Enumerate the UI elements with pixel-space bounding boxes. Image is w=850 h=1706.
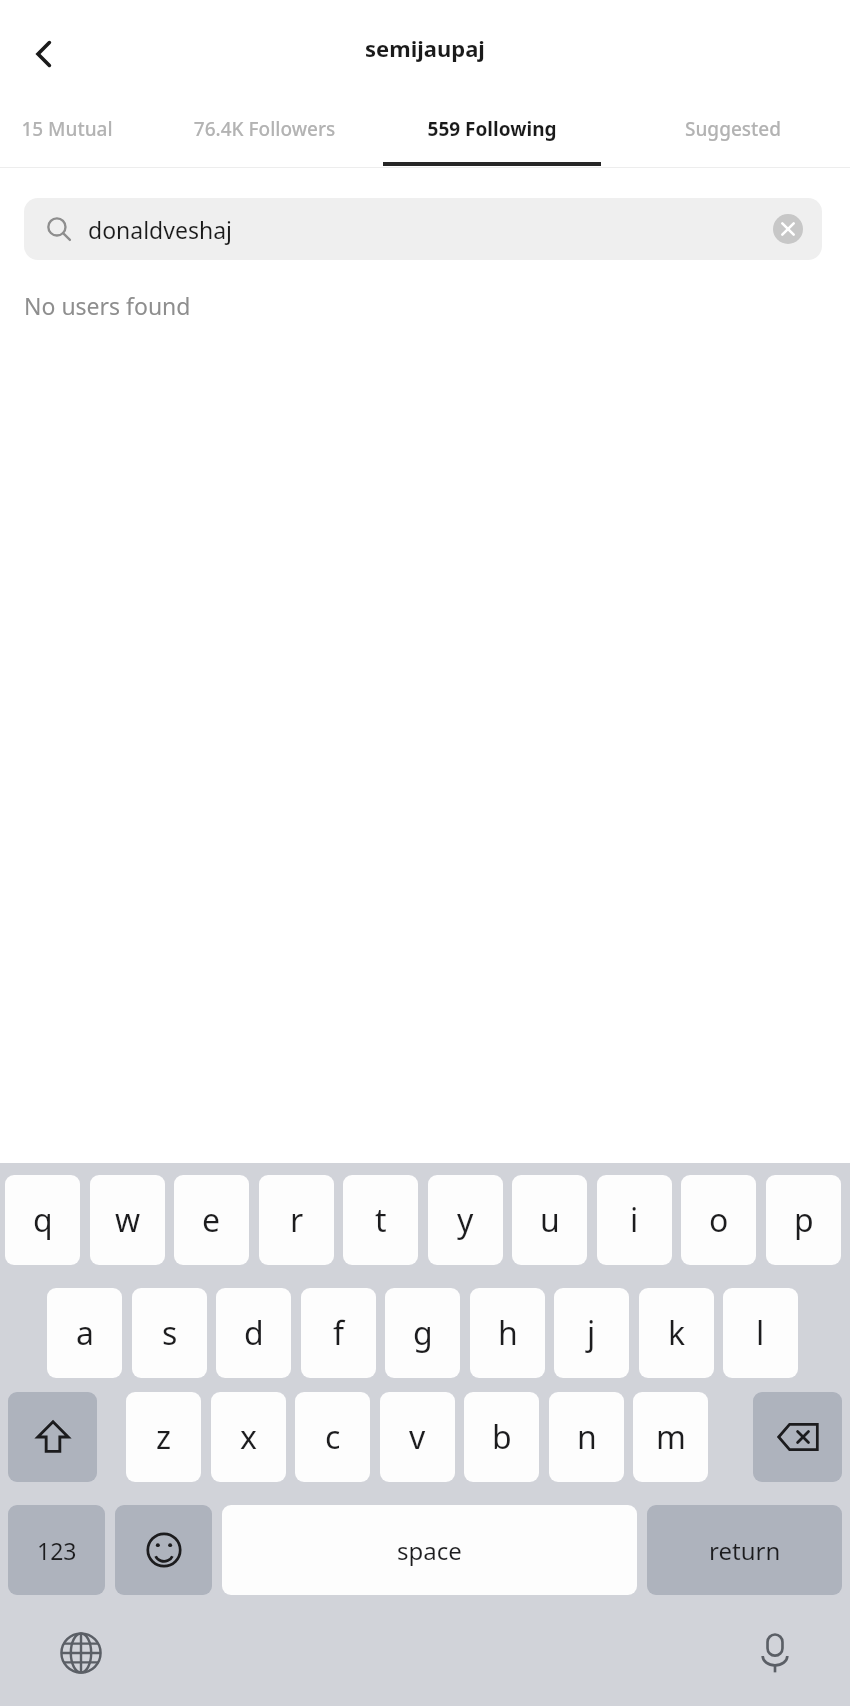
button[interactable]: Change keyboard language bbox=[46, 1618, 116, 1688]
staticText: 123 bbox=[37, 1535, 77, 1566]
button[interactable]: r bbox=[259, 1175, 334, 1265]
button[interactable]: v bbox=[380, 1392, 455, 1482]
staticText: e bbox=[202, 1198, 221, 1242]
button[interactable]: m bbox=[633, 1392, 708, 1482]
button[interactable]: w bbox=[90, 1175, 165, 1265]
button[interactable]: o bbox=[681, 1175, 756, 1265]
button[interactable]: Clear text bbox=[770, 211, 806, 247]
button[interactable]: Shift bbox=[8, 1392, 97, 1482]
button[interactable]: i bbox=[597, 1175, 672, 1265]
button[interactable]: Emoji bbox=[115, 1505, 212, 1595]
button[interactable]: 123 bbox=[8, 1505, 105, 1595]
button[interactable]: space bbox=[222, 1505, 637, 1595]
staticText: space bbox=[397, 1534, 462, 1567]
button[interactable]: t bbox=[343, 1175, 418, 1265]
staticText: u bbox=[540, 1198, 560, 1242]
staticText: z bbox=[156, 1415, 172, 1459]
button[interactable]: Backspace bbox=[753, 1392, 842, 1482]
staticText: t bbox=[375, 1198, 387, 1242]
staticText: semijaupaj bbox=[365, 33, 485, 63]
staticText: g bbox=[413, 1311, 433, 1355]
button[interactable]: return bbox=[647, 1505, 842, 1595]
button[interactable]: x bbox=[211, 1392, 286, 1482]
staticText: i bbox=[630, 1198, 639, 1242]
staticText: p bbox=[794, 1198, 814, 1242]
staticText: x bbox=[240, 1415, 257, 1459]
button[interactable]: j bbox=[554, 1288, 629, 1378]
staticText: b bbox=[492, 1415, 512, 1459]
button[interactable]: u bbox=[512, 1175, 587, 1265]
staticText: w bbox=[115, 1198, 141, 1242]
button[interactable]: d bbox=[216, 1288, 291, 1378]
button[interactable]: l bbox=[723, 1288, 798, 1378]
button[interactable]: 76.4K Followers bbox=[152, 116, 377, 142]
staticText: a bbox=[76, 1311, 94, 1355]
staticText: c bbox=[325, 1415, 341, 1459]
staticText: n bbox=[577, 1415, 597, 1459]
staticText: f bbox=[333, 1311, 345, 1355]
staticText: h bbox=[498, 1311, 518, 1355]
button[interactable]: 15 Mutual bbox=[0, 116, 142, 142]
button[interactable]: a bbox=[47, 1288, 122, 1378]
button[interactable]: h bbox=[470, 1288, 545, 1378]
button[interactable]: p bbox=[766, 1175, 841, 1265]
button[interactable]: y bbox=[428, 1175, 503, 1265]
button[interactable]: g bbox=[385, 1288, 460, 1378]
staticText: l bbox=[756, 1311, 765, 1355]
staticText: m bbox=[656, 1415, 686, 1459]
staticText: o bbox=[709, 1198, 729, 1242]
button[interactable]: k bbox=[639, 1288, 714, 1378]
staticText: k bbox=[668, 1311, 686, 1355]
button[interactable]: f bbox=[301, 1288, 376, 1378]
button[interactable]: s bbox=[132, 1288, 207, 1378]
staticText: y bbox=[457, 1198, 474, 1242]
button[interactable]: Voice input bbox=[740, 1618, 810, 1688]
staticText: v bbox=[409, 1415, 426, 1459]
button[interactable]: q bbox=[5, 1175, 80, 1265]
button[interactable]: Back bbox=[8, 18, 80, 90]
button[interactable]: donaldveshaj bbox=[24, 198, 822, 260]
staticText: s bbox=[162, 1311, 178, 1355]
button[interactable]: c bbox=[295, 1392, 370, 1482]
button[interactable]: Suggested bbox=[608, 116, 850, 142]
button[interactable]: b bbox=[464, 1392, 539, 1482]
staticText: j bbox=[587, 1311, 596, 1355]
button[interactable]: e bbox=[174, 1175, 249, 1265]
staticText: d bbox=[244, 1311, 264, 1355]
staticText: q bbox=[33, 1198, 53, 1242]
staticText: return bbox=[709, 1534, 781, 1567]
staticText: donaldveshaj bbox=[88, 214, 232, 245]
staticText: r bbox=[290, 1198, 304, 1242]
button[interactable]: z bbox=[126, 1392, 201, 1482]
staticText: No users found bbox=[24, 290, 191, 321]
button[interactable]: 559 Following bbox=[383, 116, 601, 142]
button[interactable]: n bbox=[549, 1392, 624, 1482]
